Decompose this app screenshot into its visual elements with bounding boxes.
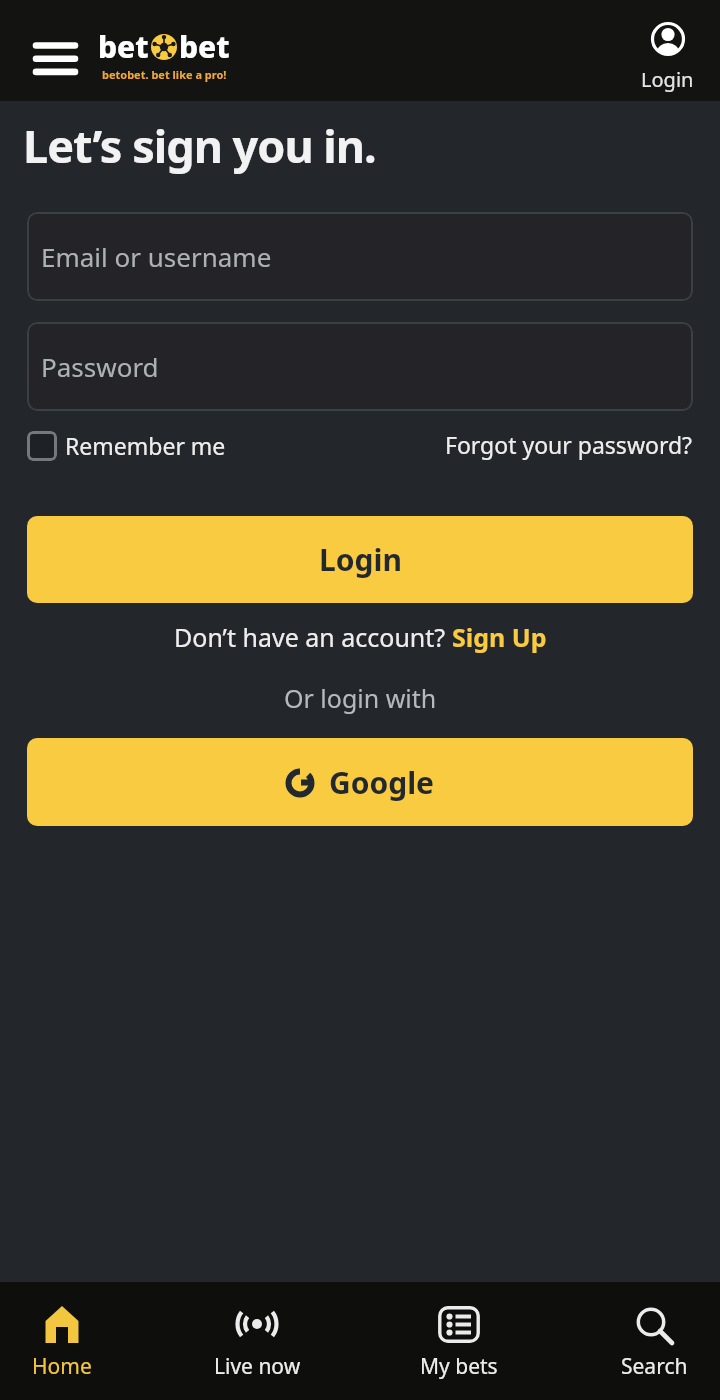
staticText: Or login with (284, 681, 437, 715)
staticText: bet (179, 26, 230, 67)
staticText: Search (621, 1352, 688, 1381)
button[interactable]: Login (641, 21, 694, 93)
button[interactable]: Home (0, 1282, 137, 1400)
button[interactable]: Search (579, 1282, 720, 1400)
staticText: Don’t have an account? (174, 620, 452, 654)
button[interactable]: Live now (182, 1282, 332, 1400)
staticText: Home (32, 1352, 92, 1381)
staticText: Remember me (65, 430, 226, 461)
staticText: betobet. bet like a pro! (102, 67, 227, 82)
staticText: My bets (420, 1352, 498, 1381)
staticText: Sign Up (452, 620, 547, 654)
staticText: Live now (214, 1352, 301, 1381)
button[interactable]: Login (27, 516, 693, 603)
staticText: Login (319, 539, 402, 580)
button[interactable]: Password (27, 322, 693, 411)
button[interactable] (24, 34, 86, 84)
staticText: bet (98, 26, 149, 67)
button[interactable]: Email or username (27, 212, 693, 301)
staticText: Google (329, 762, 435, 803)
staticText: Let’s sign you in. (23, 115, 376, 176)
staticText: Email or username (41, 239, 272, 274)
staticText: Login (641, 66, 694, 93)
button[interactable]: My bets (384, 1282, 534, 1400)
button[interactable]: Remember me (27, 430, 226, 461)
button[interactable]: Forgot your password? (445, 429, 693, 460)
staticText: Password (41, 349, 159, 384)
button[interactable]: Google (27, 738, 693, 826)
button[interactable]: Don’t have an account? (174, 620, 547, 654)
